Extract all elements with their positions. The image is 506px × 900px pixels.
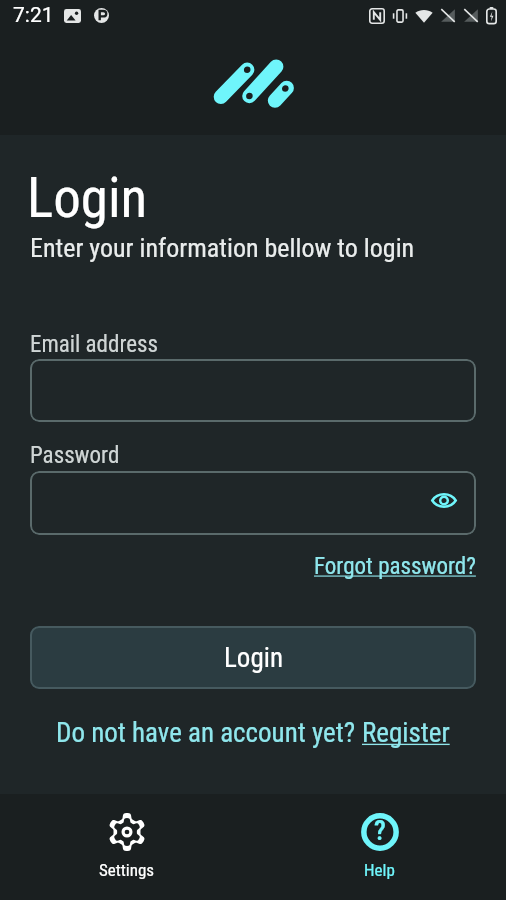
staticText: Help — [364, 860, 395, 880]
staticText: 7:21 — [13, 3, 54, 28]
button[interactable]: Register — [362, 717, 450, 749]
staticText: Enter your information bellow to login — [30, 233, 415, 263]
button[interactable]: ? — [253, 794, 506, 880]
staticText: Login — [224, 642, 283, 674]
staticText: Email address — [30, 331, 158, 358]
staticText: Login — [27, 166, 148, 230]
button[interactable]: Forgot password? — [314, 553, 476, 580]
button[interactable]: Settings — [0, 794, 253, 880]
staticText: ? — [374, 815, 386, 847]
staticText: Do not have an account yet? — [56, 717, 362, 749]
staticText: Settings — [99, 860, 155, 880]
button[interactable]: Show password — [426, 482, 462, 518]
staticText: Password — [30, 442, 120, 469]
button[interactable]: Show password — [30, 471, 476, 535]
button[interactable]: Login — [30, 626, 476, 689]
button[interactable] — [30, 359, 476, 422]
